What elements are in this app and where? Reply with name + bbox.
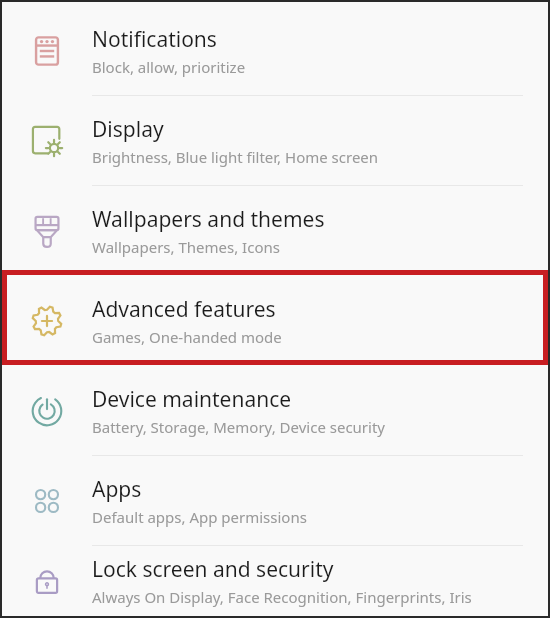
staticText: Device maintenance: [92, 385, 292, 414]
staticText: Lock screen and security: [92, 555, 334, 584]
staticText: Games, One-handed mode: [92, 327, 282, 347]
button[interactable]: Advanced features: [2, 276, 548, 366]
staticText: Brightness, Blue light filter, Home scre…: [92, 147, 379, 167]
staticText: Always On Display, Face Recognition, Fin…: [92, 587, 472, 607]
button[interactable]: Lock screen and security: [2, 546, 548, 616]
staticText: Block, allow, prioritize: [92, 57, 246, 77]
button[interactable]: Wallpapers and themes: [2, 186, 548, 276]
staticText: Battery, Storage, Memory, Device securit…: [92, 417, 385, 437]
button[interactable]: Notifications: [2, 6, 548, 96]
staticText: Default apps, App permissions: [92, 507, 307, 527]
staticText: Wallpapers and themes: [92, 205, 325, 234]
button[interactable]: Apps: [2, 456, 548, 546]
staticText: Display: [92, 115, 164, 144]
staticText: Notifications: [92, 25, 217, 54]
button[interactable]: Display: [2, 96, 548, 186]
staticText: Apps: [92, 475, 142, 504]
button[interactable]: Device maintenance: [2, 366, 548, 456]
staticText: Advanced features: [92, 295, 276, 324]
staticText: Wallpapers, Themes, Icons: [92, 237, 280, 257]
